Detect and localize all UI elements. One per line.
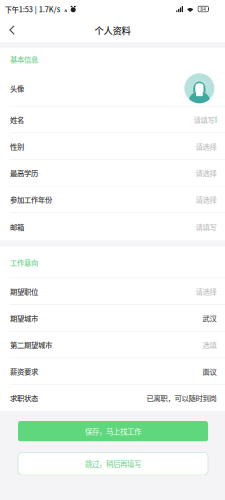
button[interactable]: 期望城市 xyxy=(0,305,225,332)
button[interactable]: 期望职位 xyxy=(0,278,225,305)
button[interactable]: 性别 xyxy=(0,133,225,160)
button[interactable]: 薪资要求 xyxy=(0,358,225,385)
staticText: 选填 xyxy=(202,339,216,350)
staticText: 薪资要求 xyxy=(10,366,38,376)
staticText: 工作意向 xyxy=(10,257,38,267)
staticText: 个人资料 xyxy=(94,23,130,37)
staticText: 已离职，可以随时到岗 xyxy=(146,392,216,403)
staticText: 期望职位 xyxy=(10,286,38,297)
button[interactable]: 头像 xyxy=(0,70,225,107)
staticText: 期望城市 xyxy=(10,313,38,323)
staticText: 保存，马上找工作 xyxy=(85,426,141,437)
staticText: 基本信息 xyxy=(10,54,38,64)
staticText: 请填写 xyxy=(195,221,216,232)
button[interactable]: 邮箱 xyxy=(0,213,225,241)
staticText: 面议 xyxy=(202,366,216,376)
staticText: 84 xyxy=(200,5,206,12)
staticText: 性别 xyxy=(10,141,24,151)
button[interactable]: 参加工作年份 xyxy=(0,186,225,213)
button[interactable]: 姓名 xyxy=(0,107,225,133)
staticText: 第二期望城市 xyxy=(10,339,52,350)
staticText: 请填写 xyxy=(194,114,215,125)
staticText: 头像 xyxy=(10,83,24,94)
staticText: 下午1:53 | 1.7K/s xyxy=(5,4,61,14)
staticText: 请选择 xyxy=(195,167,216,178)
staticText: 武汉 xyxy=(202,313,216,323)
staticText: 最高学历 xyxy=(10,167,38,178)
staticText: 跳过，稍后再填写 xyxy=(85,458,141,469)
staticText: 请选择 xyxy=(195,194,216,205)
button[interactable]: 跳过，稍后再填写 xyxy=(18,452,208,475)
staticText: 姓名 xyxy=(10,114,24,125)
staticText: 求职状态 xyxy=(10,392,38,403)
button[interactable]: Back xyxy=(0,18,24,42)
staticText: 邮箱 xyxy=(10,221,24,232)
staticText: 请选择 xyxy=(195,286,216,297)
button[interactable]: 求职状态 xyxy=(0,385,225,411)
button[interactable]: 保存，马上找工作 xyxy=(18,421,208,441)
staticText: 请选择 xyxy=(195,141,216,151)
staticText: 参加工作年份 xyxy=(10,194,52,205)
button[interactable]: 最高学历 xyxy=(0,160,225,186)
button[interactable]: 第二期望城市 xyxy=(0,332,225,358)
